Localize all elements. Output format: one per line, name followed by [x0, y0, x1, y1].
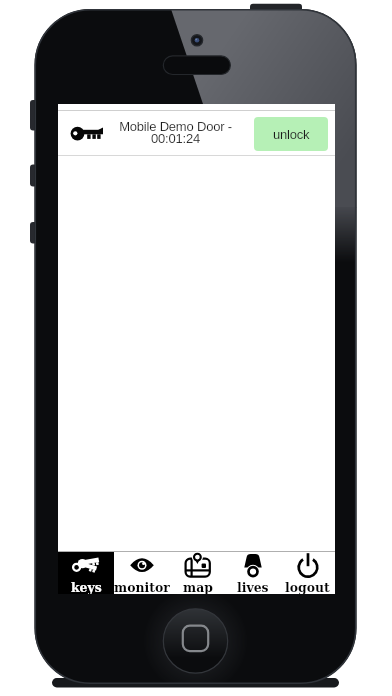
- staticText: monitor: [114, 579, 170, 594]
- button[interactable]: map: [170, 552, 225, 594]
- staticText: keys: [71, 579, 102, 594]
- staticText: lives: [237, 579, 269, 594]
- staticText: Mobile Demo Door - 00:01:24: [119, 119, 232, 146]
- button[interactable]: logout: [280, 552, 335, 594]
- staticText: map: [183, 579, 213, 594]
- staticText: unlock: [273, 127, 310, 142]
- button[interactable]: monitor: [114, 552, 170, 594]
- button[interactable]: unlock: [254, 117, 328, 151]
- button[interactable]: lives: [225, 552, 280, 594]
- button[interactable]: keys: [58, 552, 114, 594]
- staticText: logout: [285, 579, 330, 594]
